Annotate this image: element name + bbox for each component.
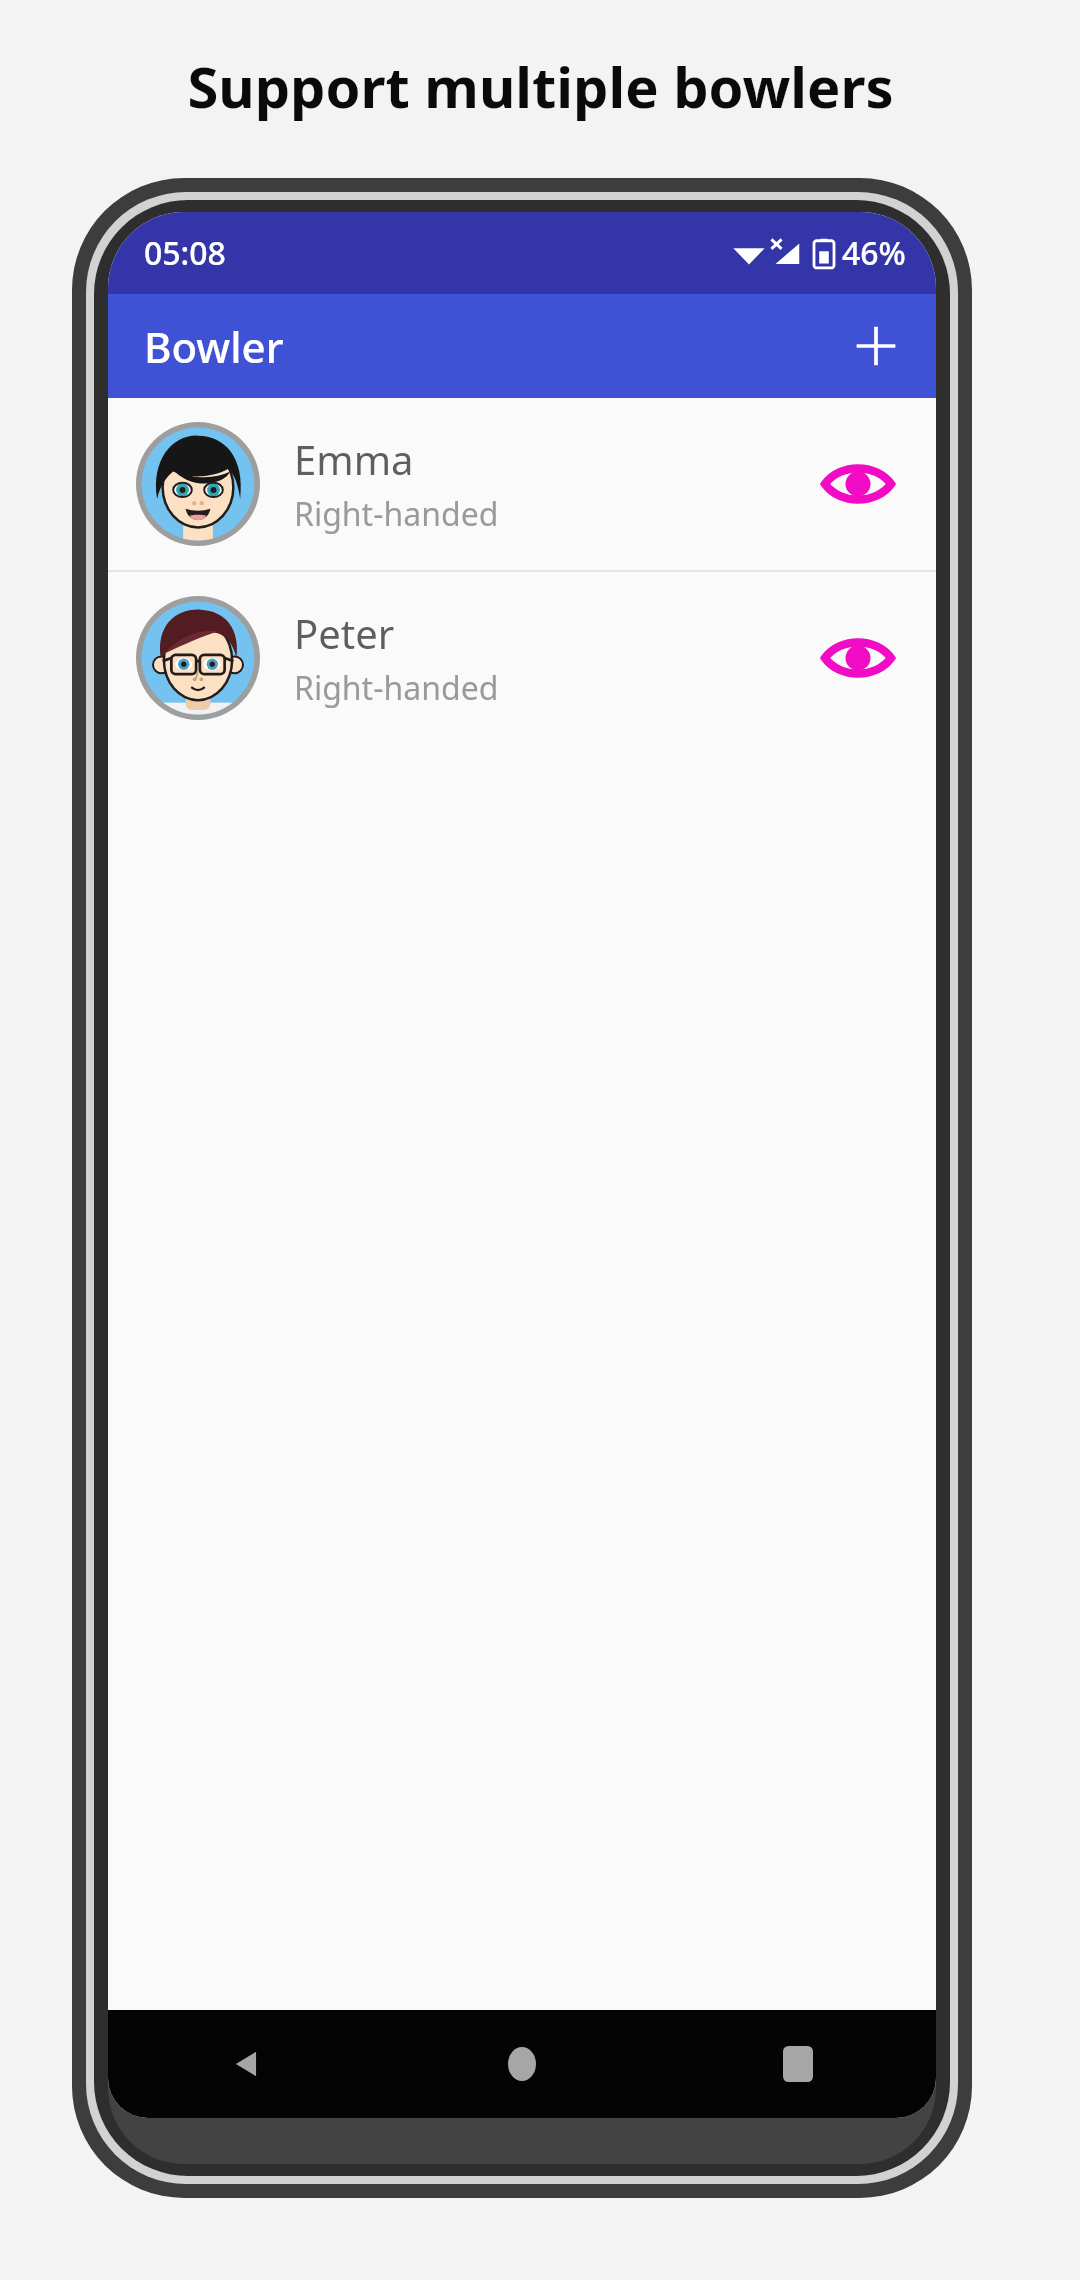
staticText: Support multiple bowlers — [187, 48, 894, 124]
staticText: Right-handed — [294, 492, 499, 536]
staticText: Emma — [294, 432, 414, 486]
button[interactable]: View Emma — [808, 434, 908, 534]
button[interactable]: Add bowler — [834, 304, 918, 388]
staticText: Right-handed — [294, 666, 499, 710]
staticText: 46% — [842, 231, 906, 275]
staticText: Peter — [294, 606, 395, 660]
button[interactable]: Emma — [108, 398, 936, 570]
button[interactable]: View Peter — [808, 608, 908, 708]
button[interactable]: Recents — [660, 2010, 936, 2118]
button[interactable]: Home — [384, 2010, 660, 2118]
staticText: 05:08 — [144, 231, 226, 275]
button[interactable]: Back — [108, 2010, 384, 2118]
staticText: Bowler — [144, 318, 284, 375]
button[interactable]: Peter — [108, 572, 936, 744]
